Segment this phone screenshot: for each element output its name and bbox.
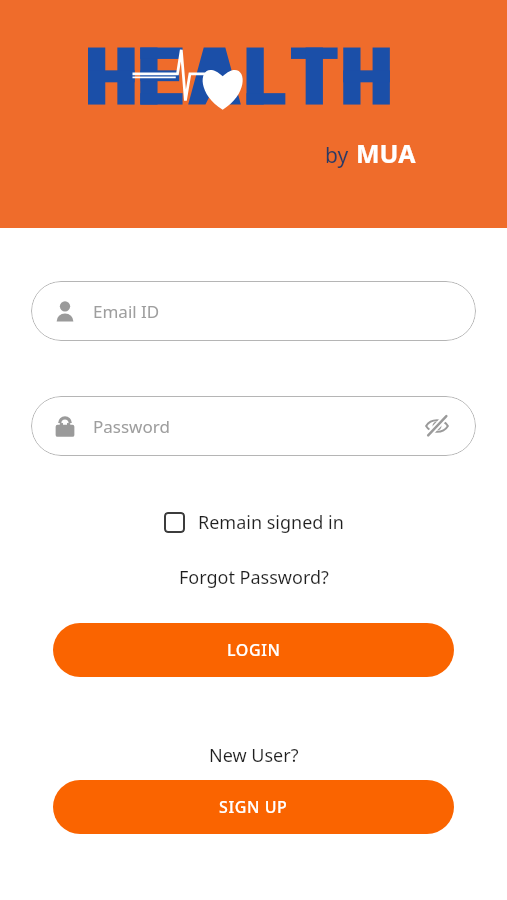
button[interactable]: Forgot Password? [173, 561, 335, 594]
staticText: Remain signed in [198, 510, 344, 535]
button[interactable]: SIGN UP [53, 780, 454, 834]
button[interactable]: Show password [420, 409, 454, 443]
staticText: by [325, 141, 349, 170]
staticText: Forgot Password? [179, 565, 329, 590]
button[interactable]: Password [31, 396, 476, 456]
staticText: Email ID [93, 300, 160, 323]
staticText: LOGIN [227, 639, 281, 661]
button[interactable]: Email ID [31, 281, 476, 341]
staticText: New User? [209, 743, 299, 768]
button[interactable]: Remain signed in [160, 506, 348, 539]
staticText: SIGN UP [219, 796, 288, 818]
staticText: Password [93, 415, 170, 438]
staticText: MUA [356, 136, 416, 170]
button[interactable]: LOGIN [53, 623, 454, 677]
